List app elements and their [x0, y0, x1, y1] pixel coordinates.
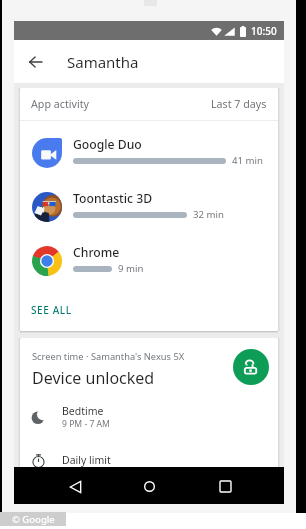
button[interactable]: Device unlocked: [233, 349, 269, 385]
staticText: Toontastic 3D: [73, 190, 153, 207]
button[interactable]: Recents: [213, 474, 238, 499]
button[interactable]: Daily limit: [20, 437, 278, 482]
staticText: Bedtime: [62, 404, 104, 418]
staticText: Last 7 days: [211, 97, 267, 112]
button[interactable]: Bedtime: [20, 396, 278, 437]
button[interactable]: SEE ALL: [25, 299, 78, 321]
staticText: 9 min: [118, 262, 144, 275]
staticText: © Google: [12, 513, 55, 526]
staticText: Samantha: [67, 52, 139, 72]
staticText: 9 PM - 7 AM: [62, 418, 110, 430]
staticText: Device unlocked: [32, 367, 155, 389]
staticText: 41 min: [232, 154, 263, 167]
staticText: Screen time · Samantha's Nexus 5X: [32, 350, 185, 363]
button[interactable]: Back: [22, 49, 48, 75]
staticText: 10:50: [251, 24, 277, 38]
button[interactable]: Home: [137, 474, 162, 499]
button[interactable]: Chrome: [20, 235, 278, 289]
button[interactable]: Back: [63, 474, 88, 499]
staticText: 32 min: [193, 208, 224, 221]
staticText: App activity: [31, 97, 89, 112]
staticText: Daily limit: [62, 453, 111, 467]
button[interactable]: Google Duo: [20, 127, 278, 181]
button[interactable]: Toontastic 3D: [20, 181, 278, 235]
staticText: SEE ALL: [31, 303, 72, 317]
staticText: Chrome: [73, 244, 120, 261]
staticText: Google Duo: [73, 136, 142, 153]
